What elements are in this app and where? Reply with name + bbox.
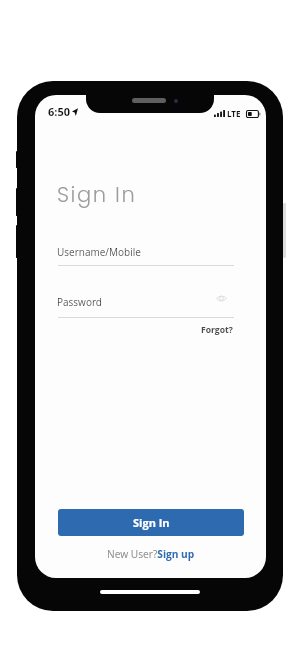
staticText: Password [57, 295, 102, 309]
staticText: Sign In [57, 180, 137, 209]
staticText: Username/Mobile [57, 245, 141, 259]
staticText: 6:50 [48, 104, 70, 119]
staticText: LTE [227, 108, 241, 119]
staticText: Sign In [133, 515, 170, 530]
button[interactable]: Sign In [58, 509, 244, 536]
button[interactable]: Show password [214, 291, 229, 306]
button[interactable]: New User?Sign up [105, 545, 197, 563]
button[interactable]: Forgot? [199, 322, 235, 338]
